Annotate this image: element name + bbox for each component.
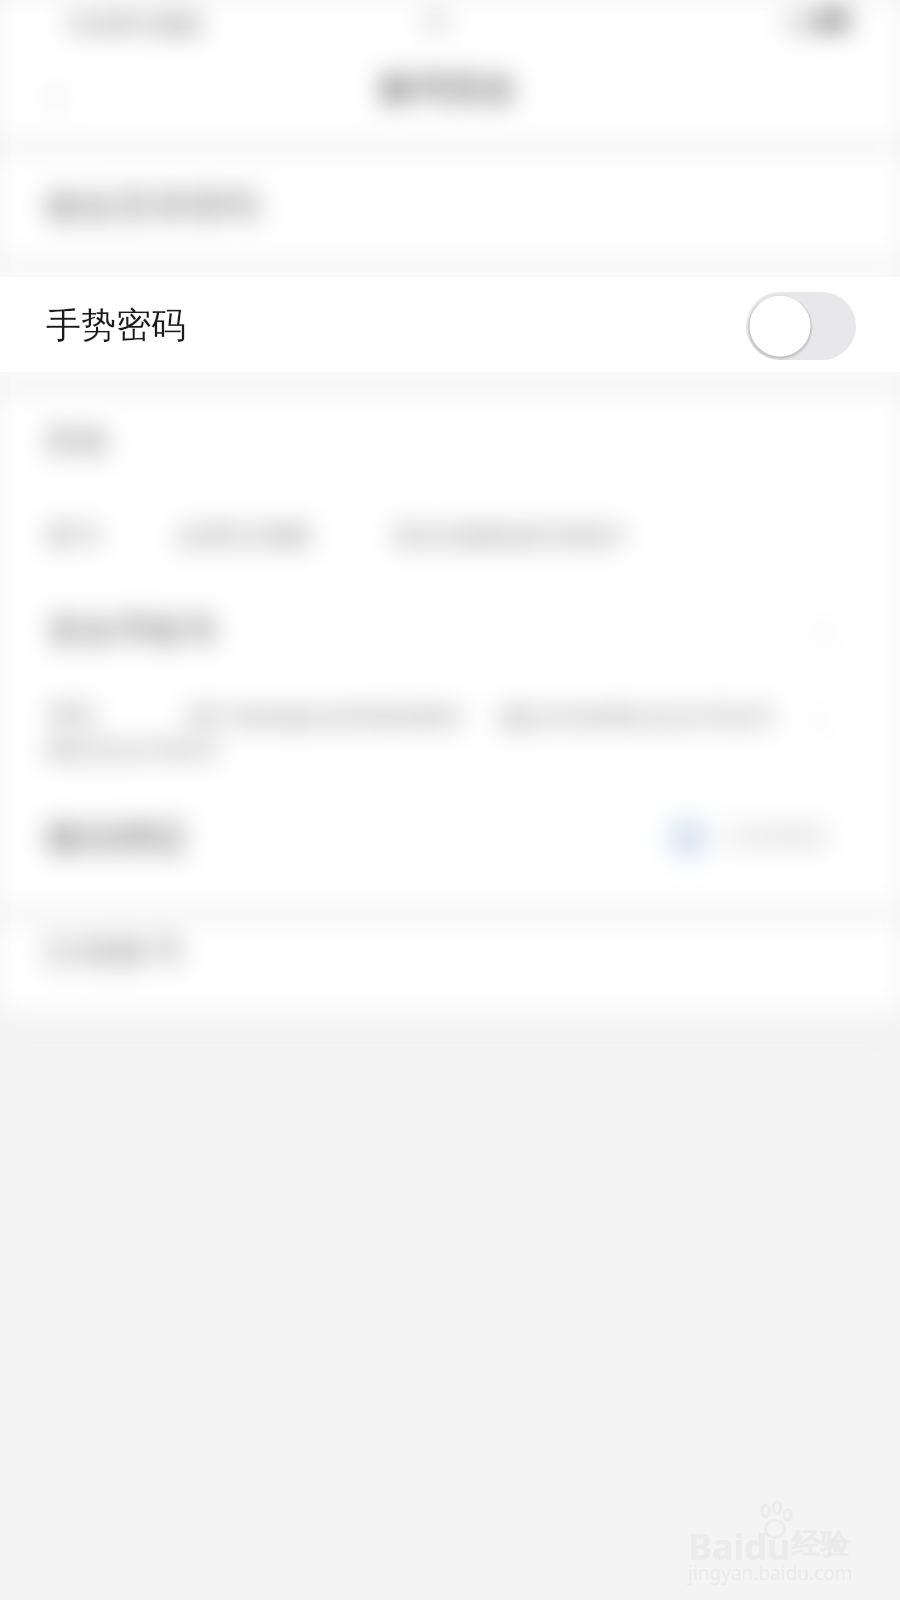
- staticText: 绑定安全手机号: [45, 735, 220, 766]
- staticText: 绑定: [48, 699, 98, 730]
- staticText: 安全手机号: [48, 609, 218, 652]
- staticText: 请在电脑端登录操作: [392, 520, 626, 553]
- staticText: 注销账号: [42, 929, 186, 974]
- staticText: 建议尽快绑定安全手机号: [500, 702, 775, 733]
- staticText: 修改登录密码: [44, 183, 260, 228]
- staticText: 微信绑定: [45, 815, 189, 860]
- staticText: 其他: [45, 421, 107, 460]
- staticText: jingyan.baidu.com: [688, 1560, 853, 1586]
- staticText: 用于身份验证和找回密码: [186, 702, 461, 733]
- staticText: 如需注销帐: [178, 519, 313, 553]
- staticText: 经验: [791, 1526, 849, 1563]
- staticText: 72%: [784, 6, 834, 40]
- staticText: Baidu: [688, 1522, 791, 1571]
- button[interactable]: 手势密码: [0, 277, 900, 372]
- staticText: 账号安全: [380, 68, 516, 111]
- staticText: 手势密码: [46, 303, 186, 347]
- button[interactable]: 手势密码开关: [746, 292, 856, 360]
- staticText: 帐号: [48, 519, 102, 553]
- staticText: 14:09中国移: [64, 6, 204, 40]
